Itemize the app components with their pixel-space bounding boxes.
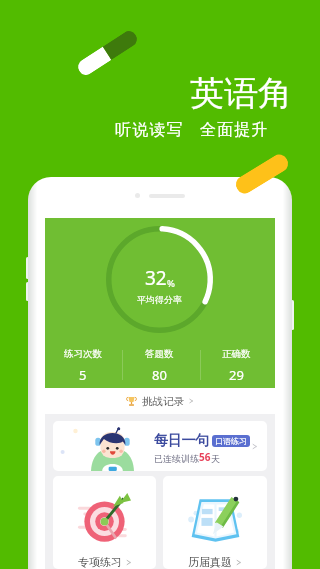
button[interactable]: 练习次数: [45, 348, 121, 384]
staticText: 平均得分率: [137, 294, 182, 305]
button[interactable]: 历届真题: [163, 476, 267, 569]
staticText: 听说读写 全面提升: [115, 118, 269, 140]
staticText: 练习次数: [64, 348, 102, 360]
staticText: 每日一句: [154, 432, 209, 450]
staticText: 专项练习: [78, 555, 122, 569]
staticText: 已连续训练: [154, 453, 199, 464]
staticText: 英语角: [190, 72, 292, 115]
button[interactable]: 挑战记录: [45, 388, 275, 414]
staticText: 56: [199, 450, 211, 464]
staticText: 天: [211, 453, 220, 464]
button[interactable]: 答题数: [121, 348, 198, 384]
staticText: 80: [152, 366, 167, 384]
button[interactable]: 每日一句: [53, 421, 267, 471]
staticText: 5: [79, 366, 87, 384]
staticText: 挑战记录: [142, 395, 184, 408]
staticText: 口语练习: [215, 436, 247, 446]
button[interactable]: 正确数: [198, 348, 275, 384]
button[interactable]: 专项练习: [53, 476, 156, 569]
staticText: 答题数: [145, 348, 174, 360]
staticText: 29: [229, 366, 244, 384]
staticText: 历届真题: [188, 555, 232, 569]
staticText: 32: [145, 265, 167, 291]
staticText: 正确数: [222, 348, 251, 360]
staticText: %: [167, 277, 175, 290]
